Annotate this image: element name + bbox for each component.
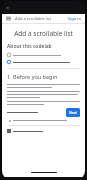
button[interactable]: Next <box>66 108 80 117</box>
staticText: 1. Before you begin <box>7 73 58 80</box>
button[interactable] <box>7 60 70 64</box>
button[interactable]: Menu <box>5 15 12 22</box>
staticText: Add a scrollable list <box>15 16 52 21</box>
staticText: Add a scrollable list <box>14 29 73 38</box>
staticText: Next <box>69 110 77 115</box>
button[interactable] <box>7 129 43 133</box>
button[interactable]: Sign in <box>67 15 82 22</box>
staticText: About this codelab <box>7 43 52 50</box>
staticText: Sign in <box>68 16 81 21</box>
